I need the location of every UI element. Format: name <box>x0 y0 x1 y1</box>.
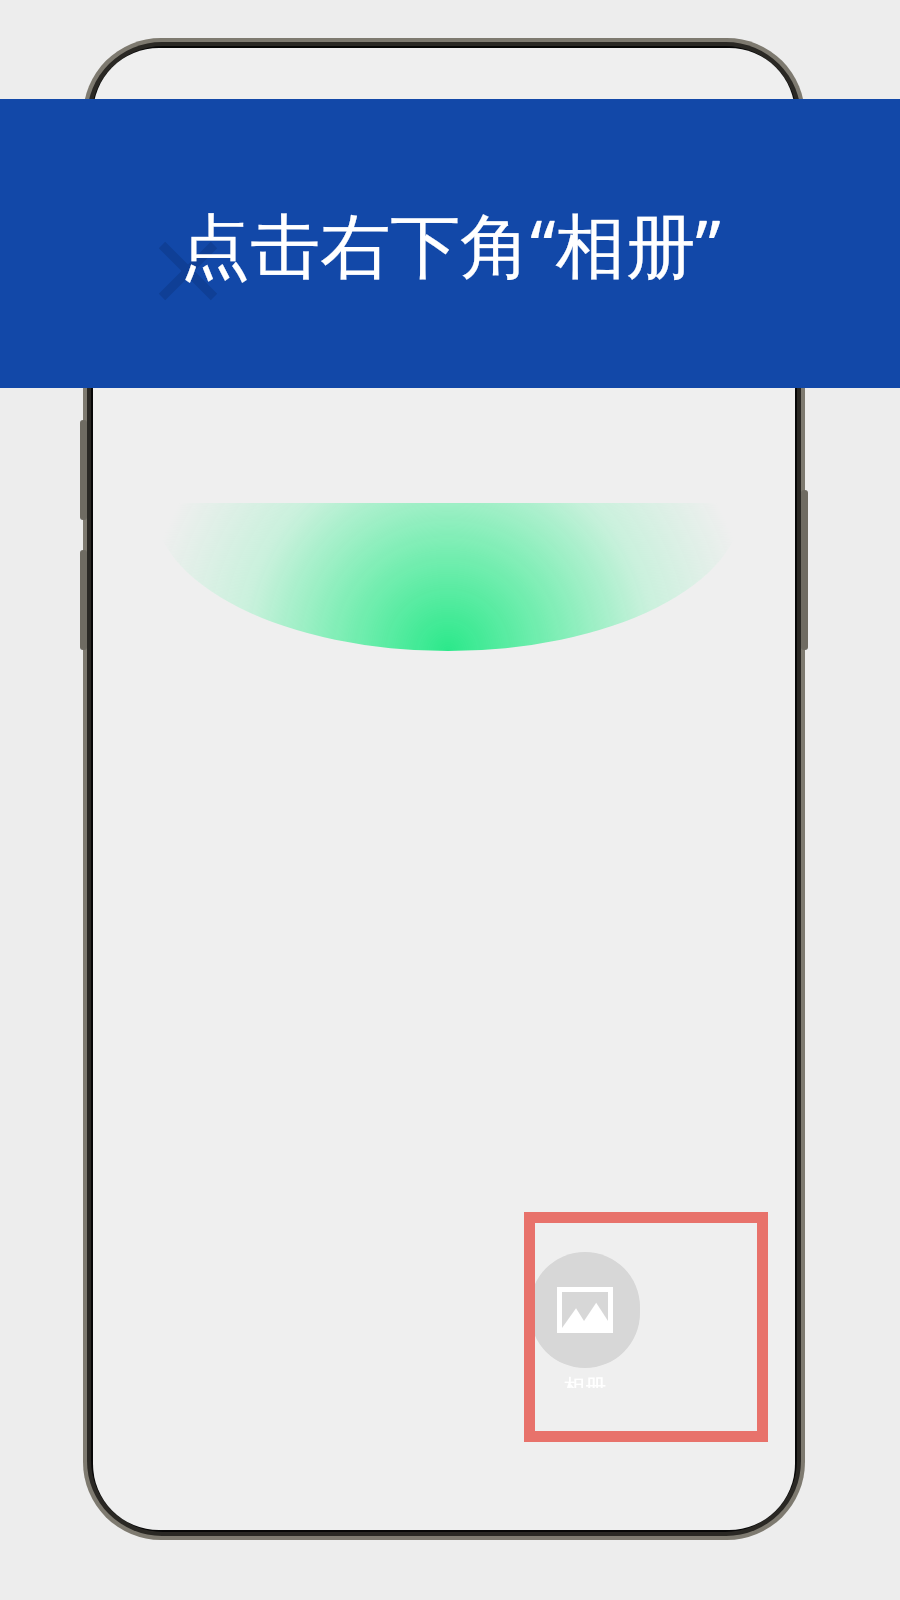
staticText: 相册 <box>564 1374 606 1388</box>
button[interactable] <box>524 1212 768 1442</box>
staticText: 点击右下角“相册” <box>180 196 721 292</box>
button[interactable]: 相册 Album <box>530 1252 640 1388</box>
